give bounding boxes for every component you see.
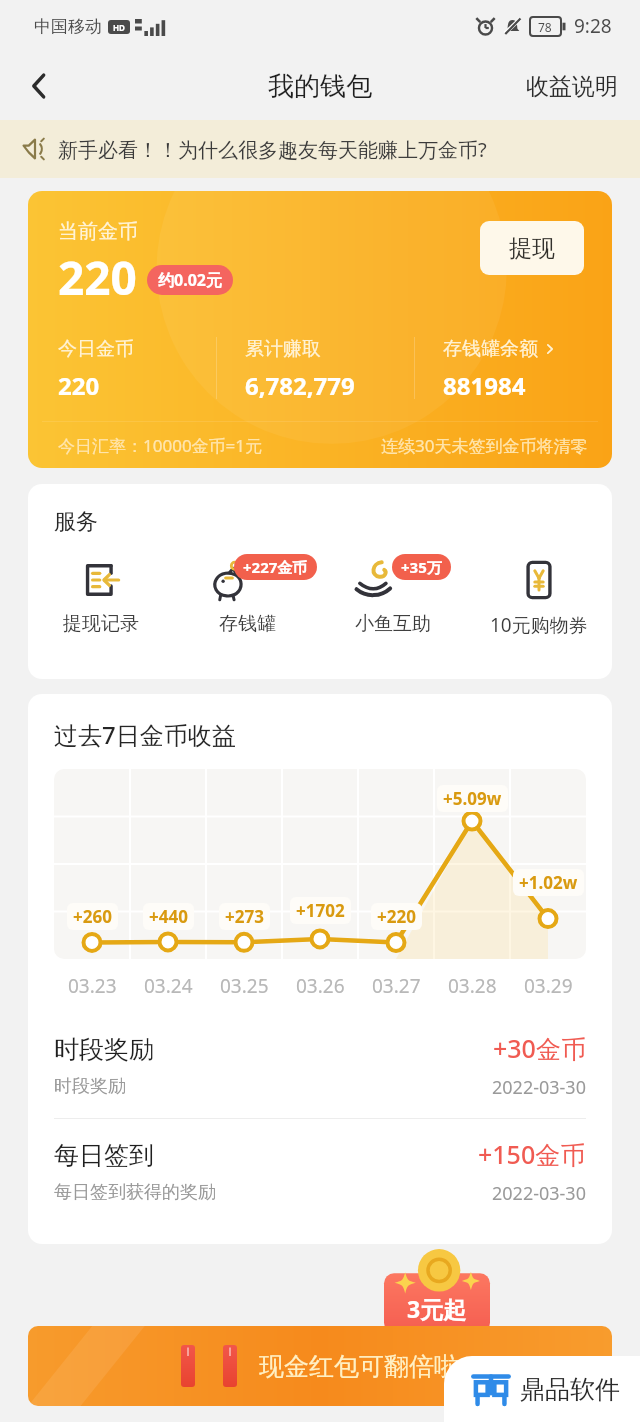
button[interactable]: 每日签到	[28, 1119, 612, 1224]
staticText: 连续30天未签到金币将清零	[381, 434, 588, 457]
staticText: +227金币	[243, 557, 308, 577]
staticText: +260	[73, 905, 112, 928]
staticText: +5.09w	[443, 787, 502, 810]
staticText: 现金红包可翻倍啦	[259, 1351, 459, 1382]
staticText: 今日金币	[58, 337, 134, 361]
staticText: +150金币	[478, 1137, 586, 1171]
staticText: 时段奖励	[54, 1075, 126, 1098]
staticText: 今日汇率：10000金币=1元	[58, 434, 263, 457]
button[interactable]: +35万	[320, 556, 466, 636]
staticText: +1702	[296, 899, 345, 922]
button[interactable]: 新手必看！！为什么很多趣友每天能赚上万金币?	[0, 120, 640, 178]
staticText: 881984	[443, 369, 526, 402]
staticText: +1.02w	[519, 871, 578, 894]
staticText: 每日签到	[54, 1140, 154, 1171]
staticText: 约0.02元	[158, 269, 222, 291]
staticText: 03.27	[372, 973, 421, 999]
staticText: 03.24	[144, 973, 193, 999]
staticText: 我的钱包	[268, 70, 372, 103]
button[interactable]: 收益说明	[518, 62, 626, 111]
staticText: 03.26	[296, 973, 345, 999]
staticText: 小鱼互助	[355, 612, 431, 636]
staticText: 时段奖励	[54, 1034, 154, 1065]
staticText: +273	[225, 905, 264, 928]
staticText: HD	[113, 22, 125, 33]
staticText: +35万	[401, 557, 442, 577]
button[interactable]: 3元起 红包	[384, 1254, 490, 1350]
staticText: 存钱罐	[219, 612, 276, 636]
button[interactable]: 当前金币	[28, 191, 612, 468]
staticText: 累计赚取	[245, 337, 321, 361]
staticText: 服务	[54, 508, 98, 536]
staticText: 03.23	[68, 973, 117, 999]
staticText: 当前金币	[58, 219, 138, 244]
button[interactable]: +227金币	[174, 556, 320, 636]
button[interactable]: 现金红包可翻倍啦	[28, 1326, 612, 1406]
staticText: +440	[149, 905, 188, 928]
staticText: 提现	[509, 234, 555, 263]
button[interactable]: Back	[16, 63, 62, 109]
staticText: 03.28	[448, 973, 497, 999]
staticText: 鼎品软件	[520, 1374, 620, 1405]
staticText: 03.25	[220, 973, 269, 999]
staticText: 2022-03-30	[492, 1075, 586, 1100]
button[interactable]: 提现记录	[28, 556, 174, 636]
button[interactable]: 时段奖励	[28, 1013, 612, 1119]
staticText: 每日签到获得的奖励	[54, 1181, 216, 1204]
staticText: 过去7日金币收益	[54, 718, 236, 751]
staticText: 3元起	[407, 1293, 467, 1324]
staticText: 中国移动	[34, 16, 102, 37]
staticText: 10元购物券	[490, 612, 588, 638]
staticText: 收益说明	[526, 72, 618, 101]
staticText: 220	[58, 369, 100, 402]
button[interactable]: 提现	[480, 221, 584, 275]
staticText: 220	[58, 246, 137, 309]
staticText: 03.29	[524, 973, 573, 999]
staticText: +220	[377, 905, 416, 928]
button[interactable]: 10元购物券	[466, 556, 612, 638]
staticText: 78	[538, 19, 552, 35]
staticText: 9:28	[574, 13, 612, 39]
staticText: 提现记录	[63, 612, 139, 636]
staticText: 6,782,779	[245, 369, 355, 402]
staticText: +30金币	[493, 1031, 586, 1065]
staticText: 新手必看！！为什么很多趣友每天能赚上万金币?	[58, 136, 487, 163]
staticText: 2022-03-30	[492, 1181, 586, 1206]
staticText: 存钱罐余额	[443, 337, 538, 361]
